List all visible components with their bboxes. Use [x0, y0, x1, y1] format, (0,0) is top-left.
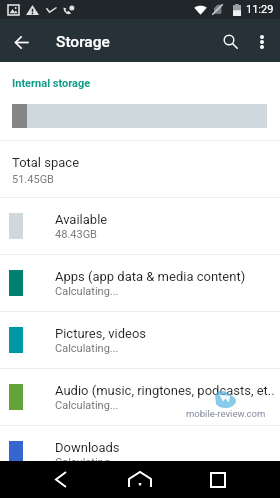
- staticText: Storage: [56, 33, 110, 51]
- staticText: Total space: [12, 155, 80, 170]
- staticText: Calculating...: [55, 342, 119, 355]
- button[interactable]: Available: [0, 198, 280, 254]
- staticText: Calculating...: [55, 399, 119, 412]
- button[interactable]: Navigate up: [6, 25, 38, 57]
- button[interactable]: Downloads: [0, 426, 280, 482]
- button[interactable]: More options: [246, 25, 278, 57]
- staticText: Pictures, videos: [55, 326, 147, 341]
- button[interactable]: Recent apps: [196, 461, 239, 498]
- button[interactable]: Back: [39, 461, 82, 498]
- staticText: Downloads: [55, 440, 120, 455]
- staticText: Calculating...: [55, 456, 119, 469]
- button[interactable]: Apps (app data & media content): [0, 255, 280, 311]
- button[interactable]: Total space: [12, 141, 280, 197]
- staticText: 51.45GB: [12, 173, 54, 186]
- button[interactable]: Pictures, videos: [0, 312, 280, 368]
- staticText: Available: [55, 212, 108, 227]
- button[interactable]: Audio (music, ringtones, podcasts, et..: [0, 369, 280, 425]
- staticText: Calculating...: [55, 285, 119, 298]
- staticText: mobile-review.com: [186, 408, 266, 419]
- staticText: Internal storage: [12, 77, 91, 90]
- button[interactable]: Home: [118, 461, 162, 498]
- staticText: 48.43GB: [55, 228, 97, 241]
- staticText: 11:29: [246, 3, 274, 16]
- staticText: Apps (app data & media content): [55, 269, 246, 284]
- button[interactable]: Search: [214, 25, 246, 57]
- staticText: Audio (music, ringtones, podcasts, et..: [55, 383, 275, 398]
